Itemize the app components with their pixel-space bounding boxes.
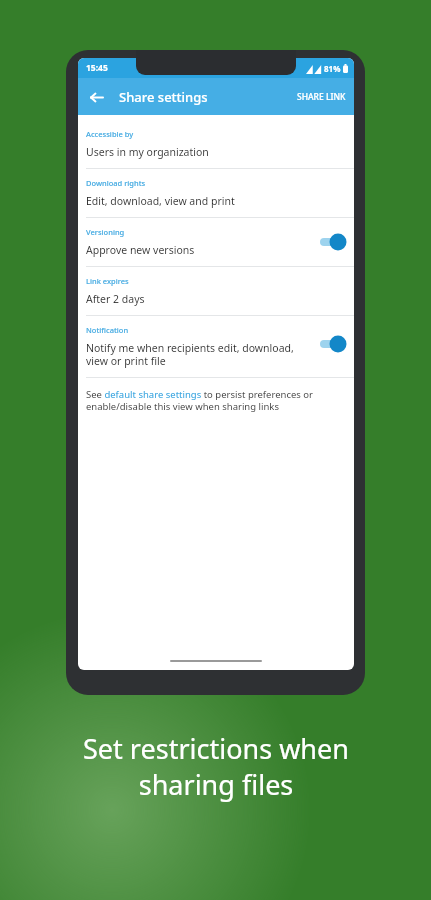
button[interactable]: Accessible by	[78, 123, 354, 168]
button[interactable]: Back	[83, 84, 109, 110]
button[interactable]: Toggle	[318, 231, 348, 253]
button[interactable]: Download rights	[78, 169, 354, 217]
staticText: Link expires	[86, 276, 129, 286]
staticText: Share settings	[119, 88, 208, 106]
button[interactable]: Toggle	[318, 333, 348, 355]
button[interactable]: Link expires	[78, 267, 354, 315]
staticText: 81%	[324, 63, 341, 74]
staticText: Versioning	[86, 227, 125, 237]
button[interactable]: SHARE LINK	[289, 83, 354, 111]
staticText: See default share settings to persist pr…	[86, 388, 344, 413]
staticText: Accessible by	[86, 129, 134, 139]
staticText: Notify me when recipients edit, download…	[86, 341, 314, 368]
staticText: 15:45	[86, 62, 108, 74]
staticText: SHARE LINK	[297, 91, 346, 103]
staticText: After 2 days	[86, 292, 145, 306]
staticText: Users in my organization	[86, 145, 209, 159]
staticText: Notification	[86, 325, 129, 335]
staticText: Approve new versions	[86, 243, 195, 257]
staticText: Edit, download, view and print	[86, 194, 235, 208]
staticText: Set restrictions when sharing files	[83, 730, 349, 803]
button[interactable]: Versioning	[78, 218, 354, 266]
button[interactable]: Notification	[78, 316, 354, 377]
staticText: Download rights	[86, 178, 146, 188]
